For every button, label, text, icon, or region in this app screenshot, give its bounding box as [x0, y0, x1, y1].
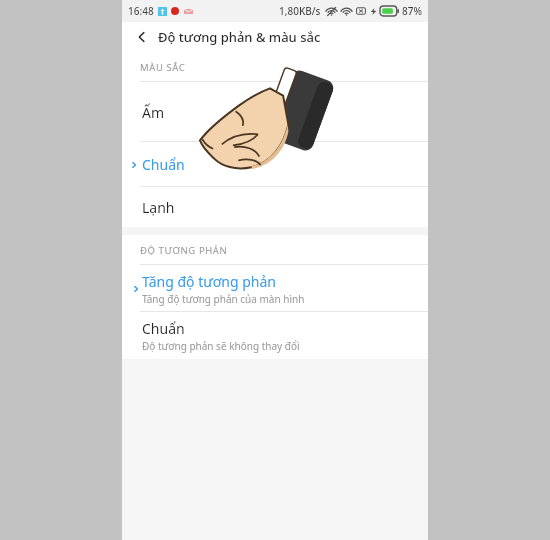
staticText: Tăng độ tương phản — [142, 272, 276, 291]
staticText: Độ tương phản & màu sắc — [158, 28, 321, 46]
button[interactable]: Tăng độ tương phản — [122, 265, 428, 312]
staticText: Lạnh — [142, 198, 175, 217]
staticText: 16:48 — [128, 4, 154, 18]
staticText: Tăng độ tương phản của màn hình — [142, 292, 305, 306]
button[interactable]: Chuẩn — [122, 142, 428, 187]
staticText: ĐỘ TƯƠNG PHẢN — [140, 244, 228, 257]
staticText: Chuẩn — [142, 155, 185, 174]
staticText: 1,80KB/s — [279, 4, 321, 18]
button[interactable]: Ấm — [122, 82, 428, 142]
staticText: 87% — [402, 4, 422, 18]
staticText: MÀU SẮC — [140, 61, 186, 74]
button[interactable]: Lạnh — [122, 187, 428, 227]
button[interactable]: Back — [132, 27, 152, 47]
staticText: Ấm — [142, 103, 165, 122]
staticText: Độ tương phản sẽ không thay đổi — [142, 339, 300, 353]
button[interactable]: Chuẩn — [122, 312, 428, 359]
staticText: Chuẩn — [142, 319, 185, 338]
